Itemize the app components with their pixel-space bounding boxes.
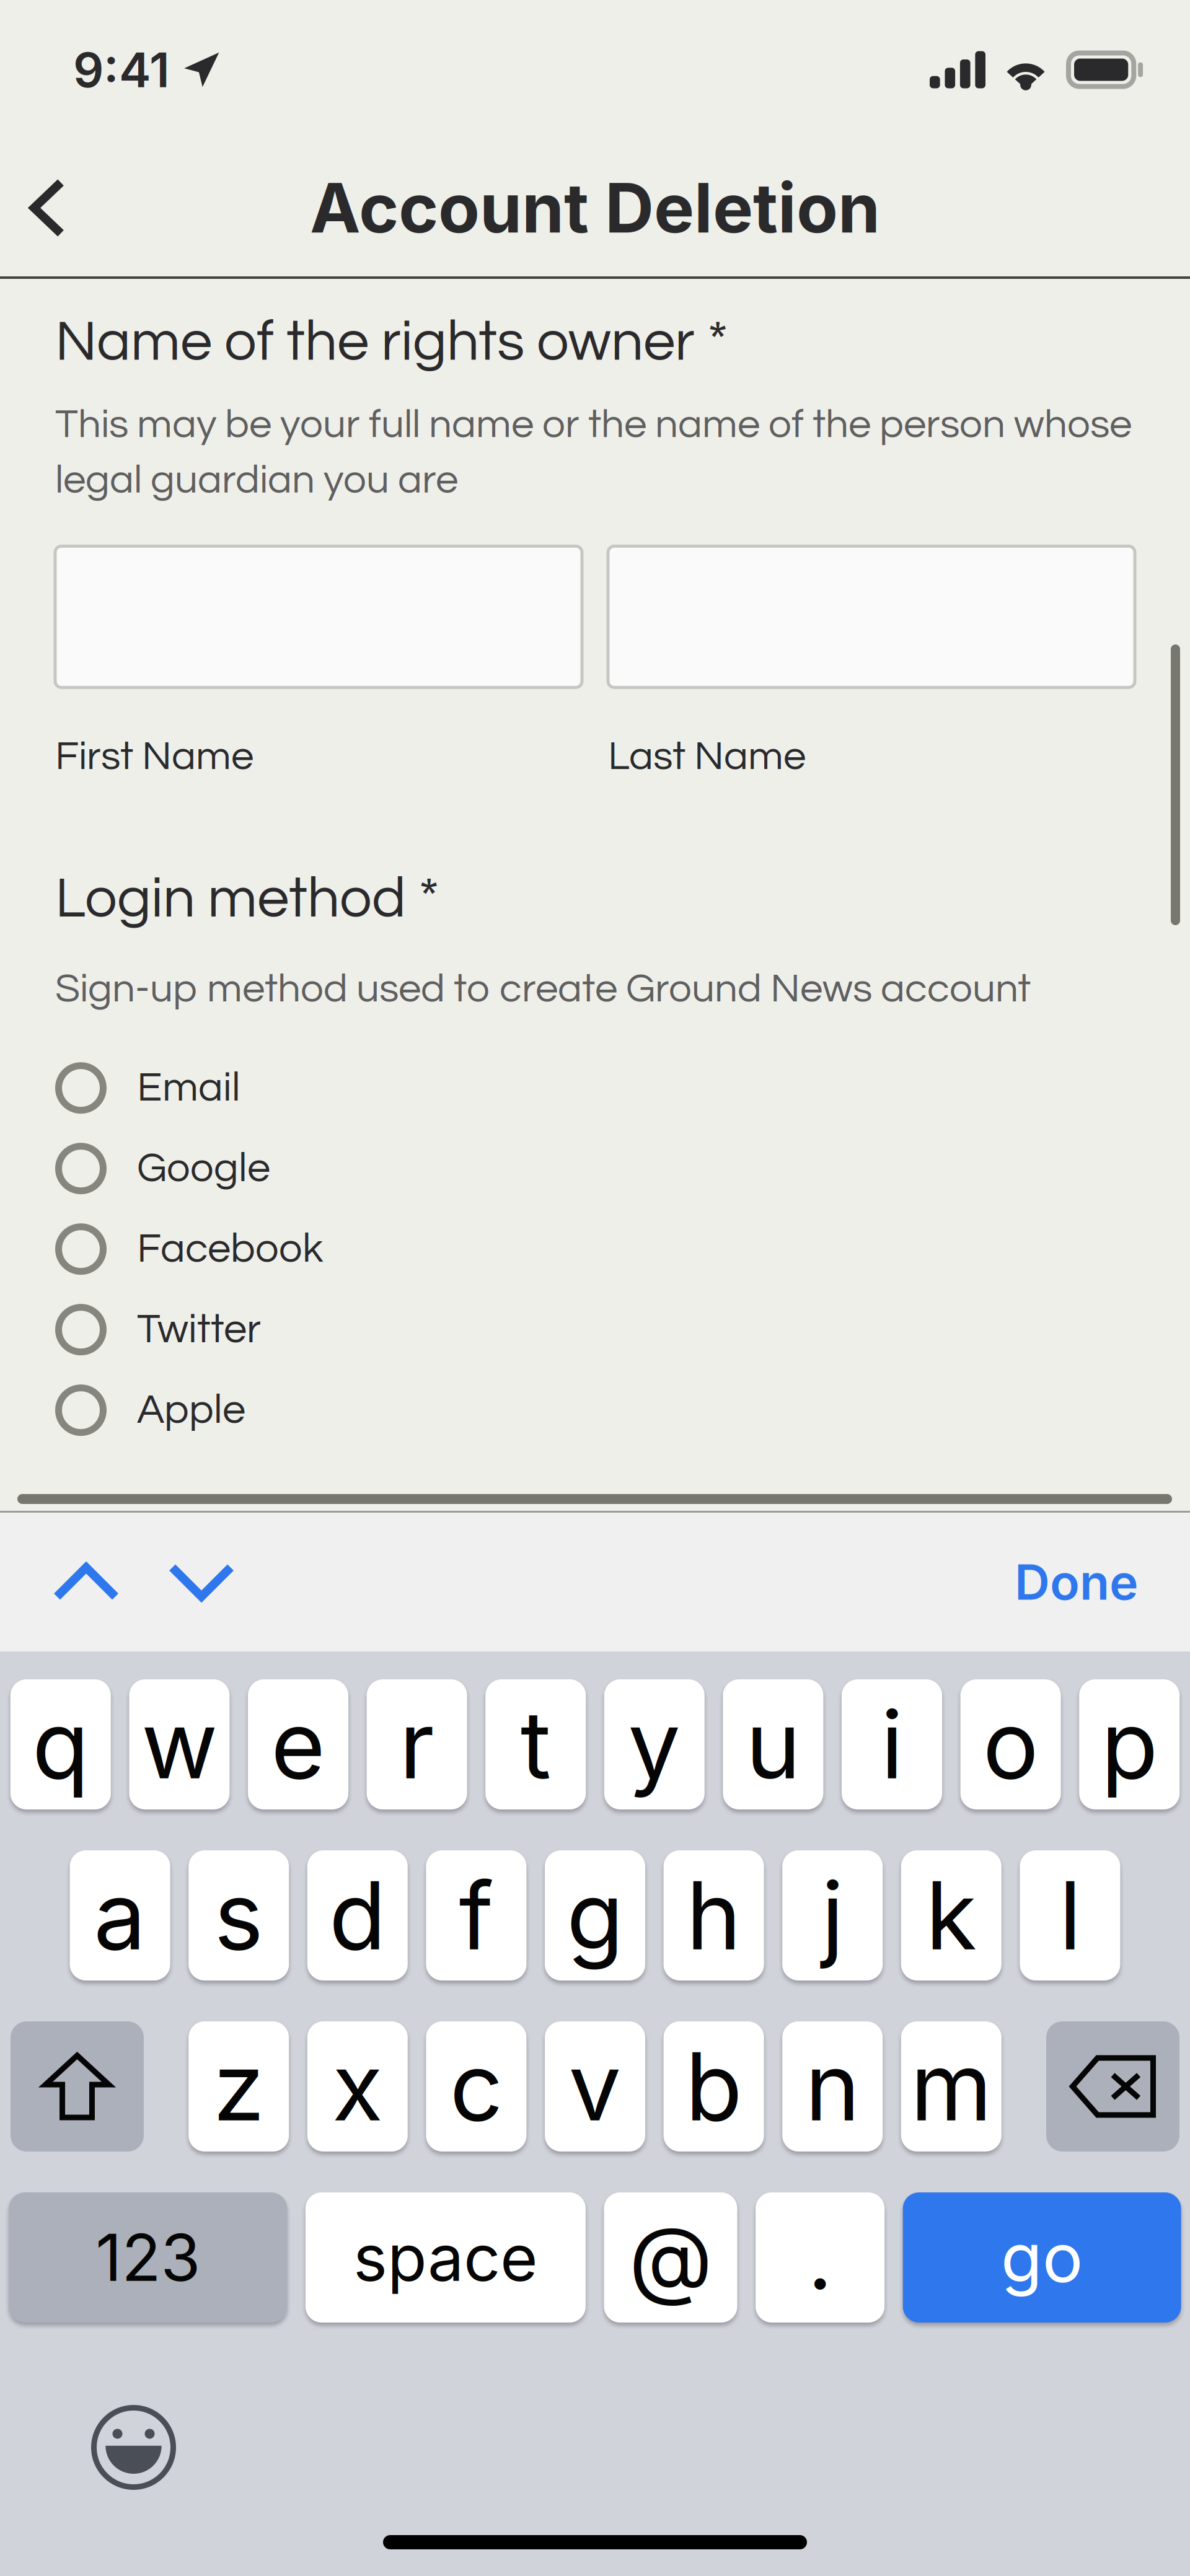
staticText: x xyxy=(332,2030,383,2143)
staticText: u xyxy=(746,1688,801,1801)
button[interactable]: Next field xyxy=(144,1515,259,1649)
staticText: space xyxy=(353,2219,538,2296)
staticText: m xyxy=(910,2030,992,2143)
staticText: r xyxy=(399,1688,435,1801)
staticText: go xyxy=(1001,2217,1083,2299)
button[interactable]: f xyxy=(426,1850,526,1980)
staticText: g xyxy=(566,1859,624,1972)
button[interactable]: Emoji keyboard xyxy=(91,2405,176,2490)
staticText: 123 xyxy=(96,2219,200,2296)
button[interactable]: h xyxy=(664,1850,764,1980)
staticText: c xyxy=(450,2030,503,2143)
button[interactable]: g xyxy=(545,1850,645,1980)
staticText: j xyxy=(821,1859,844,1972)
button[interactable]: . xyxy=(756,2192,885,2323)
button[interactable]: c xyxy=(426,2021,526,2152)
button[interactable]: go xyxy=(903,2192,1181,2323)
staticText: f xyxy=(459,1859,494,1972)
staticText: Google xyxy=(137,1147,270,1190)
button[interactable]: Delete xyxy=(1046,2021,1179,2152)
staticText: b xyxy=(685,2030,742,2143)
staticText: Name of the rights owner * xyxy=(55,313,728,372)
staticText: e xyxy=(271,1688,325,1801)
button[interactable]: space xyxy=(305,2192,586,2323)
button[interactable]: o xyxy=(960,1679,1061,1809)
staticText: y xyxy=(628,1688,681,1801)
staticText: l xyxy=(1059,1859,1081,1972)
staticText: First Name xyxy=(55,736,253,777)
button[interactable]: m xyxy=(901,2021,1001,2152)
staticText: p xyxy=(1101,1688,1158,1801)
staticText: Twitter xyxy=(137,1308,261,1351)
staticText: Sign-up method used to create Ground New… xyxy=(55,968,1031,1010)
button[interactable]: Facebook xyxy=(55,1209,1190,1289)
button[interactable]: y xyxy=(604,1679,705,1809)
button[interactable]: 123 xyxy=(9,2192,287,2323)
button[interactable]: l xyxy=(1020,1850,1120,1980)
button[interactable]: u xyxy=(723,1679,823,1809)
button[interactable]: i xyxy=(842,1679,942,1809)
staticText: . xyxy=(808,2205,832,2310)
staticText: Account Deletion xyxy=(310,167,880,249)
staticText: @ xyxy=(629,2205,712,2310)
button[interactable]: z xyxy=(189,2021,289,2152)
button[interactable]: w xyxy=(129,1679,230,1809)
button[interactable]: a xyxy=(70,1850,170,1980)
staticText: z xyxy=(213,2030,264,2143)
staticText: d xyxy=(329,1859,386,1972)
button[interactable]: v xyxy=(545,2021,645,2152)
button[interactable]: b xyxy=(664,2021,764,2152)
button[interactable]: Shift xyxy=(11,2021,144,2152)
staticText: 9:41 xyxy=(73,41,170,99)
staticText: s xyxy=(214,1859,264,1972)
button[interactable]: e xyxy=(248,1679,348,1809)
button[interactable]: Done xyxy=(984,1515,1190,1649)
staticText: Facebook xyxy=(137,1228,323,1270)
staticText: Last Name xyxy=(608,736,806,777)
button[interactable]: @ xyxy=(604,2192,737,2323)
button[interactable]: s xyxy=(189,1850,289,1980)
staticText: k xyxy=(926,1859,977,1972)
staticText: Email xyxy=(137,1067,240,1109)
staticText: Done xyxy=(1015,1553,1139,1612)
button[interactable]: p xyxy=(1079,1679,1180,1809)
button[interactable]: t xyxy=(485,1679,586,1809)
button[interactable]: j xyxy=(782,1850,883,1980)
button[interactable]: Back xyxy=(0,143,111,273)
button[interactable]: x xyxy=(307,2021,408,2152)
staticText: v xyxy=(569,2030,621,2143)
button[interactable]: Email xyxy=(55,1048,1190,1128)
staticText: o xyxy=(983,1688,1039,1801)
button[interactable]: Google xyxy=(55,1128,1190,1209)
staticText: h xyxy=(686,1859,741,1972)
staticText: Apple xyxy=(137,1389,245,1432)
button[interactable]: Previous field xyxy=(0,1515,144,1649)
button[interactable]: Apple xyxy=(55,1370,1190,1450)
button[interactable]: n xyxy=(782,2021,883,2152)
staticText: a xyxy=(94,1859,146,1972)
staticText: w xyxy=(141,1688,217,1801)
staticText: i xyxy=(881,1688,903,1801)
button[interactable]: q xyxy=(10,1679,111,1809)
button[interactable]: k xyxy=(901,1850,1001,1980)
button[interactable]: d xyxy=(307,1850,408,1980)
staticText: Login method * xyxy=(55,870,439,929)
button[interactable]: r xyxy=(367,1679,467,1809)
staticText: n xyxy=(805,2030,860,2143)
staticText: This may be your full name or the name o… xyxy=(55,404,1132,501)
button[interactable]: Twitter xyxy=(55,1289,1190,1370)
staticText: t xyxy=(520,1688,551,1801)
staticText: q xyxy=(32,1688,89,1801)
